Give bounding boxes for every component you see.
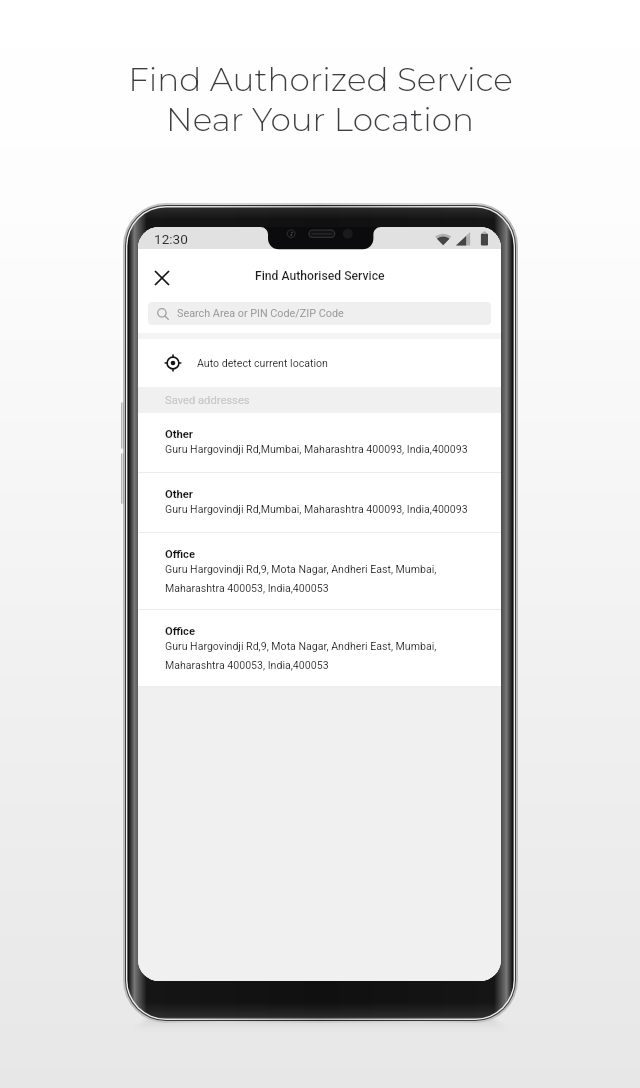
staticText: Find Authorised Service (255, 269, 385, 283)
staticText: Office (165, 548, 195, 561)
button[interactable]: Office (138, 610, 501, 687)
staticText: Near Your Location (166, 99, 474, 139)
staticText: Guru Hargovindji Rd,9, Mota Nagar, Andhe… (165, 563, 437, 575)
staticText: Other (165, 488, 193, 501)
staticText: Find Authorized Service (128, 59, 513, 99)
staticText: Guru Hargovindji Rd,Mumbai, Maharashtra … (165, 503, 468, 515)
staticText: Search Area or PIN Code/ZIP Code (177, 307, 344, 320)
button[interactable]: Auto detect current location (138, 339, 501, 387)
staticText: Auto detect current location (197, 357, 328, 369)
staticText: 12:30 (154, 231, 188, 247)
button[interactable]: Close (146, 262, 178, 294)
button[interactable]: Search Area or PIN Code/ZIP Code (148, 302, 491, 325)
button[interactable]: Office (138, 533, 501, 610)
staticText: Saved addresses (165, 394, 250, 407)
staticText: Other (165, 428, 193, 441)
staticText: Guru Hargovindji Rd,Mumbai, Maharashtra … (165, 443, 468, 455)
button[interactable]: Other (138, 413, 501, 473)
staticText: Maharashtra 400053, India,400053 (165, 582, 329, 594)
staticText: Guru Hargovindji Rd,9, Mota Nagar, Andhe… (165, 640, 437, 652)
staticText: Office (165, 625, 195, 638)
staticText: Maharashtra 400053, India,400053 (165, 659, 329, 671)
button[interactable]: Other (138, 473, 501, 533)
